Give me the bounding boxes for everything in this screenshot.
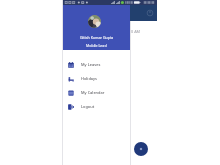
button[interactable]: Logout — [63, 100, 130, 114]
staticText: 0 AM — [131, 29, 141, 34]
button[interactable]: Account — [146, 9, 154, 17]
staticText: Gitish Kumar Gupta — [80, 35, 114, 40]
button[interactable]: Add leave — [134, 142, 148, 156]
button[interactable]: My Leaves — [63, 58, 130, 72]
staticText: Logout — [81, 104, 95, 109]
staticText: Mobile Lead — [86, 43, 107, 48]
button[interactable]: My Calendar — [63, 86, 130, 100]
button[interactable]: Holidays — [63, 72, 130, 86]
staticText: Holidays — [81, 76, 97, 81]
staticText: My Leaves — [81, 62, 101, 67]
staticText: My Calendar — [81, 90, 105, 95]
